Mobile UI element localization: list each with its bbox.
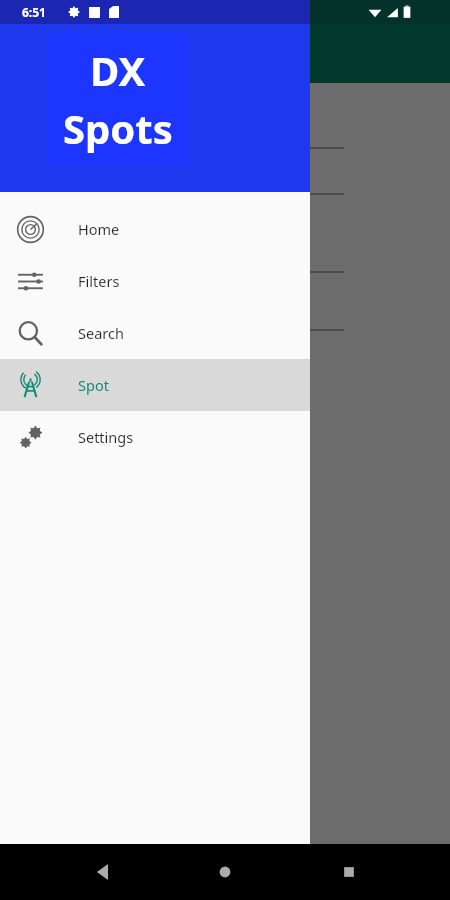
- button[interactable]: Home: [0, 203, 310, 255]
- staticText: Search: [78, 323, 124, 343]
- staticText: Spot: [78, 375, 109, 395]
- button[interactable]: Back: [85, 854, 121, 890]
- staticText: Filters: [78, 271, 120, 291]
- button[interactable]: Recent apps: [331, 854, 367, 890]
- button[interactable]: Search: [0, 307, 310, 359]
- staticText: DX: [90, 43, 146, 97]
- button[interactable]: Spot: [0, 359, 310, 411]
- staticText: Home: [78, 219, 120, 239]
- staticText: 6:51: [22, 4, 46, 20]
- button[interactable]: Filters: [0, 255, 310, 307]
- button[interactable]: Home: [207, 854, 243, 890]
- button[interactable]: Settings: [0, 411, 310, 463]
- staticText: Settings: [78, 427, 134, 447]
- staticText: Spots: [63, 101, 173, 155]
